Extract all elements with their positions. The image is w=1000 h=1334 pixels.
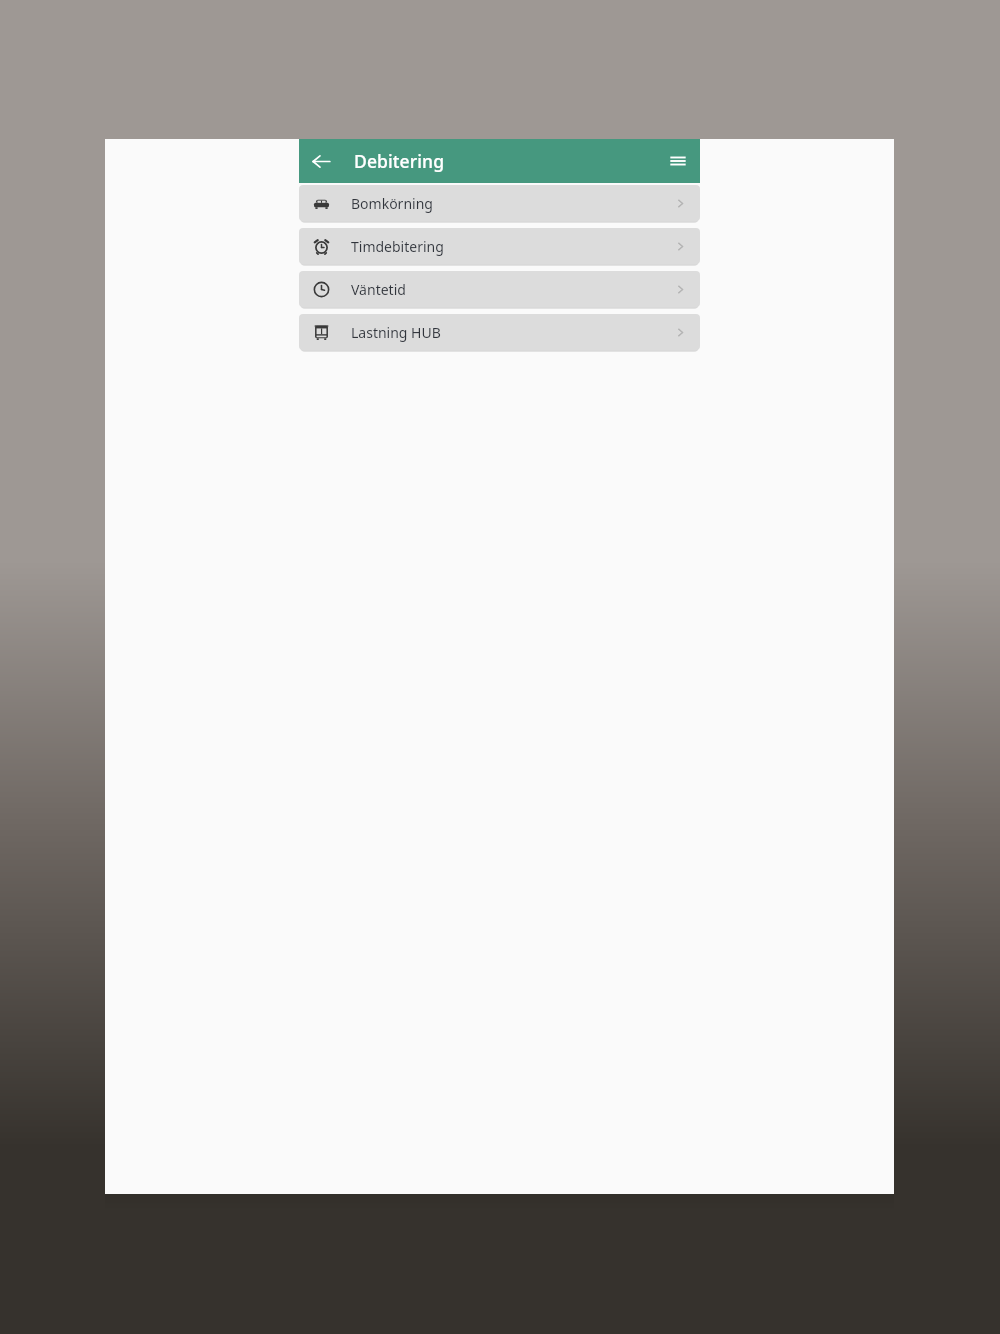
- staticText: Väntetid: [351, 280, 666, 299]
- button[interactable]: Menu: [662, 145, 694, 177]
- button[interactable]: Lastning HUB: [299, 314, 700, 350]
- staticText: Debitering: [354, 149, 445, 173]
- staticText: Timdebitering: [351, 237, 666, 256]
- staticText: Bomkörning: [351, 194, 666, 213]
- button[interactable]: Timdebitering: [299, 228, 700, 264]
- button[interactable]: Bomkörning: [299, 185, 700, 221]
- button[interactable]: Väntetid: [299, 271, 700, 307]
- staticText: Lastning HUB: [351, 323, 666, 342]
- button[interactable]: Back: [305, 145, 337, 177]
